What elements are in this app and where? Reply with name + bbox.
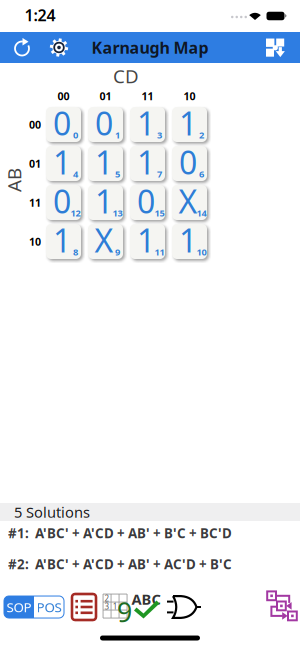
staticText: Karnaugh Map (91, 37, 208, 58)
staticText: 2 (199, 129, 204, 141)
staticText: 9 (115, 246, 120, 258)
staticText: 10 (196, 246, 206, 258)
staticText: AB (2, 168, 26, 192)
button[interactable]: Export (265, 37, 285, 57)
staticText: 1 (137, 141, 155, 183)
staticText: 1:24 (24, 4, 55, 26)
button[interactable]: Refresh (12, 37, 32, 57)
button[interactable]: Cell 0 (46, 107, 81, 142)
staticText: #2: A'BC' + A'CD + AB' + AC'D + B'C (8, 555, 232, 573)
button[interactable]: Cell 7 (130, 146, 165, 181)
staticText: 14 (196, 207, 206, 219)
staticText: CD (113, 64, 139, 88)
staticText: #1: A'BC' + A'CD + AB' + B'C + BC'D (8, 524, 232, 542)
staticText: 1 (53, 219, 71, 261)
staticText: X (94, 219, 113, 261)
staticText: 8 (73, 246, 78, 258)
staticText: ABC (131, 589, 160, 609)
staticText: 1 (137, 219, 155, 261)
button[interactable]: Cell 12 (46, 185, 81, 220)
button[interactable]: Cell 10 (172, 224, 207, 259)
staticText: 0 (73, 129, 78, 141)
staticText: X (178, 180, 197, 222)
staticText: 13 (112, 207, 122, 219)
staticText: 2 (104, 593, 109, 604)
button[interactable]: Solutions list (72, 594, 96, 620)
staticText: 1 (115, 129, 120, 141)
staticText: POS (36, 598, 61, 616)
staticText: 01 (99, 89, 111, 103)
staticText: SOP (6, 598, 31, 616)
staticText: 7 (157, 168, 162, 180)
staticText: 9 (117, 594, 132, 630)
staticText: 11 (154, 246, 164, 258)
staticText: 0 (53, 102, 71, 144)
button[interactable]: Cell 11 (130, 224, 165, 259)
staticText: 3 (157, 129, 162, 141)
staticText: 12 (70, 207, 80, 219)
button[interactable]: Cell 6 (172, 146, 207, 181)
staticText: 0 (95, 102, 113, 144)
button[interactable]: Cell 8 (46, 224, 81, 259)
staticText: 1 (95, 180, 113, 222)
staticText: 1 (179, 219, 197, 261)
staticText: 1 (53, 141, 71, 183)
button[interactable]: SOP (4, 596, 34, 618)
staticText: 1 (179, 102, 197, 144)
button[interactable]: Cell 9 (88, 224, 123, 259)
button[interactable]: Cell 5 (88, 146, 123, 181)
button[interactable]: Cell 2 (172, 107, 207, 142)
staticText: 11 (141, 89, 153, 103)
staticText: 1 (137, 102, 155, 144)
staticText: 4 (73, 168, 78, 180)
button[interactable]: Settings (49, 37, 69, 57)
staticText: 5 Solutions (14, 502, 90, 522)
button[interactable]: Cell 13 (88, 185, 123, 220)
staticText: 11 (29, 195, 41, 210)
staticText: 1 (113, 601, 118, 612)
staticText: 01 (29, 156, 41, 171)
staticText: 3 (104, 601, 109, 612)
staticText: 5 (115, 168, 120, 180)
staticText: 10 (183, 89, 195, 103)
staticText: 0 (53, 180, 71, 222)
staticText: 15 (154, 207, 164, 219)
button[interactable]: Logic gates (167, 593, 201, 620)
button[interactable]: POS (34, 596, 64, 618)
button[interactable]: Cell 14 (172, 185, 207, 220)
staticText: 1 (95, 141, 113, 183)
staticText: 6 (199, 168, 204, 180)
button[interactable]: Number grid (103, 594, 129, 620)
staticText: 00 (29, 117, 41, 132)
staticText: 10 (29, 234, 41, 249)
button[interactable]: Verify (134, 593, 162, 621)
staticText: 00 (57, 89, 69, 103)
staticText: 0 (137, 180, 155, 222)
button[interactable]: Cell 4 (46, 146, 81, 181)
button[interactable]: Cell 1 (88, 107, 123, 142)
button[interactable]: Schematic (266, 590, 297, 621)
button[interactable]: Cell 15 (130, 185, 165, 220)
button[interactable]: Cell 3 (130, 107, 165, 142)
staticText: 0 (179, 141, 197, 183)
